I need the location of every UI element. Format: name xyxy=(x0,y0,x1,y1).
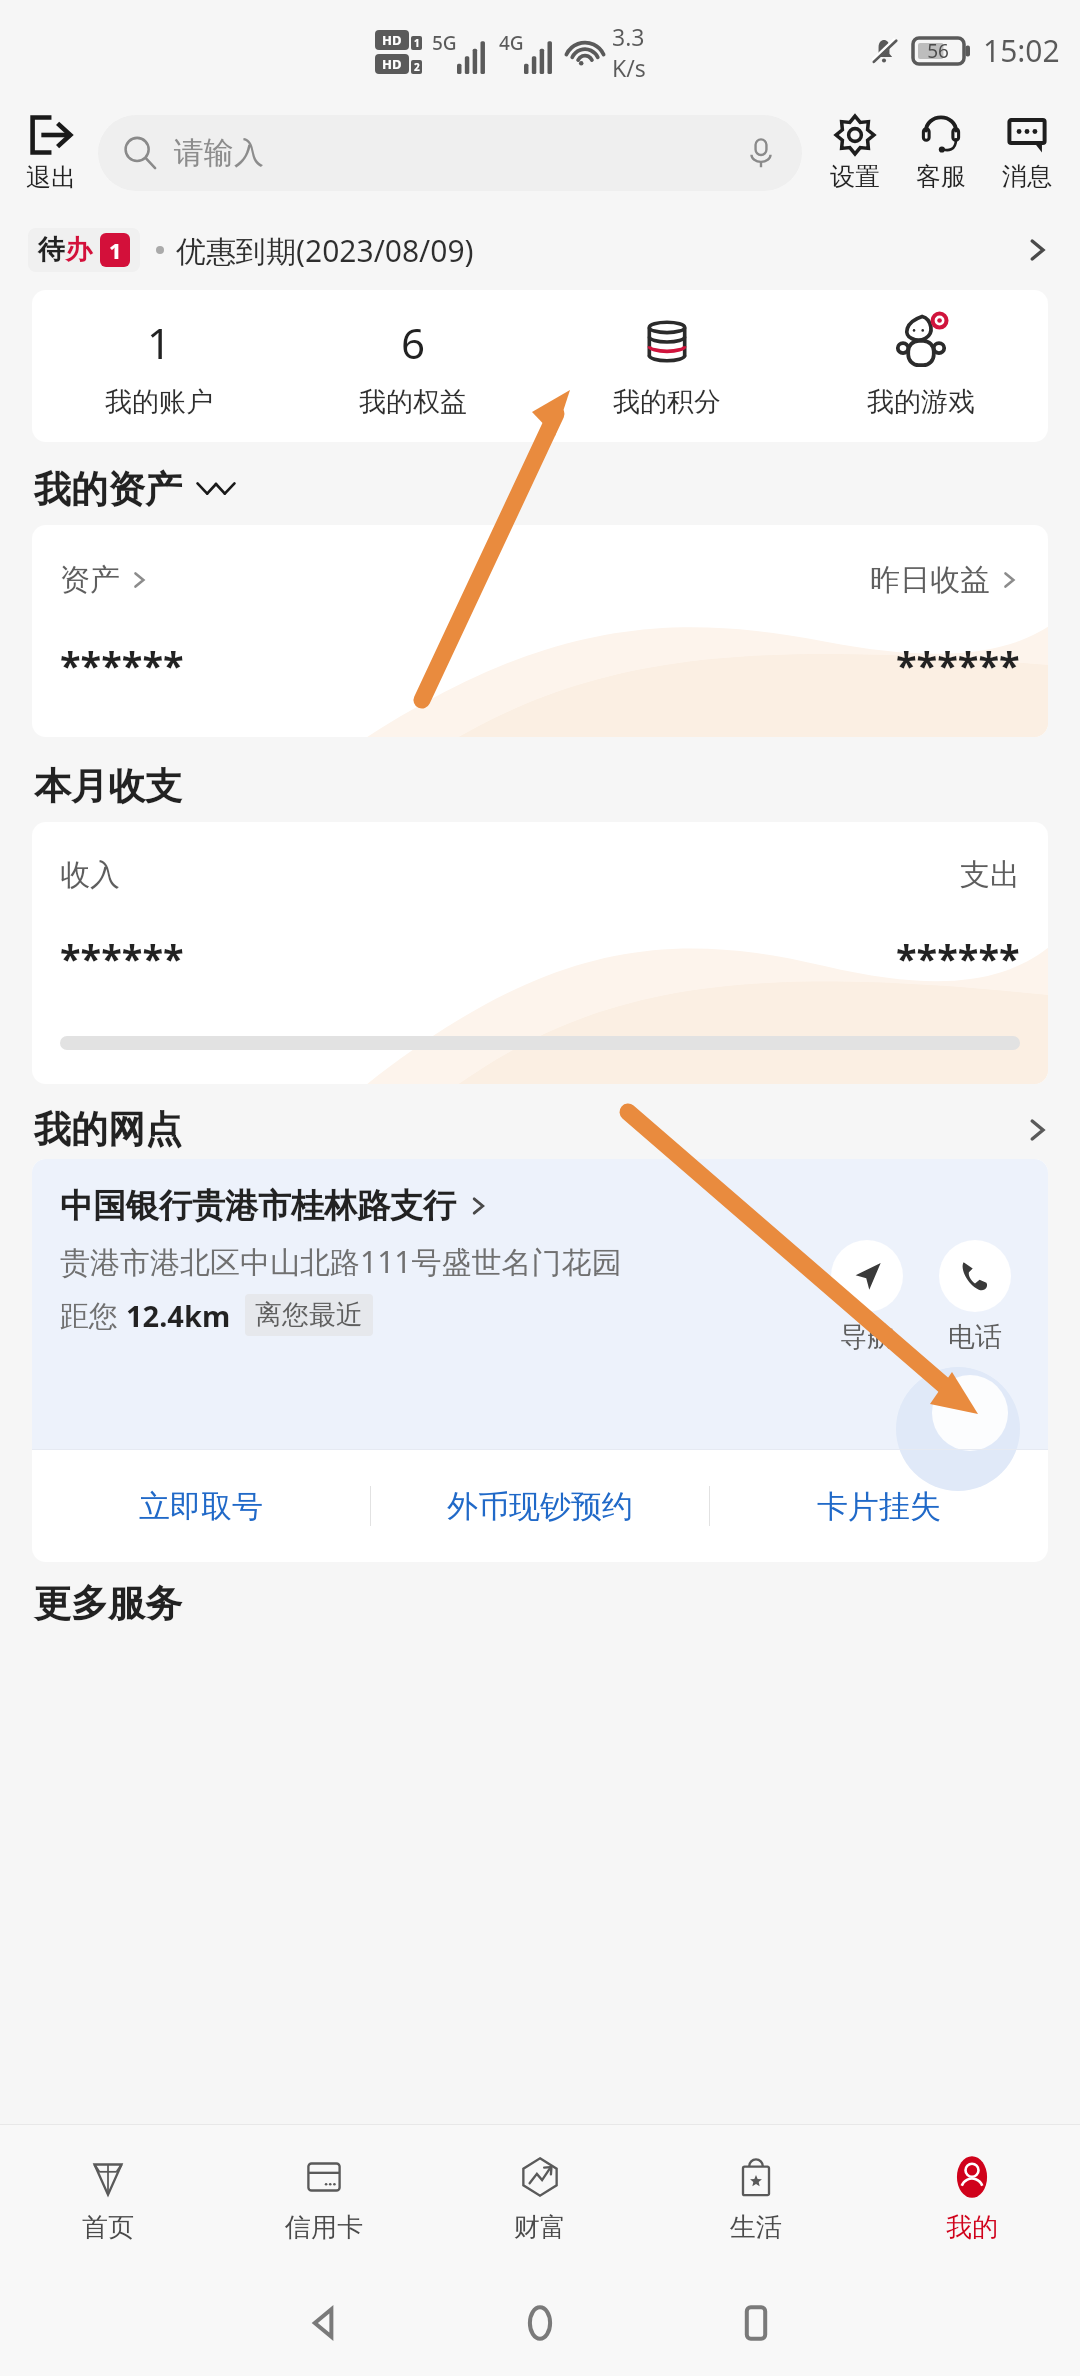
button[interactable]: 外币现钞预约 xyxy=(371,1450,709,1562)
staticText: 收入 xyxy=(60,856,120,894)
staticText: 导航 xyxy=(840,1320,894,1354)
button[interactable]: 客服 xyxy=(898,113,984,192)
staticText: 3.3 xyxy=(612,21,645,52)
button[interactable]: 立即取号 xyxy=(32,1450,370,1562)
staticText: 我的网点 xyxy=(34,1106,182,1153)
button[interactable]: 返回 xyxy=(216,2270,432,2376)
button[interactable]: 生活 xyxy=(648,2125,864,2270)
staticText: 我的权益 xyxy=(359,385,467,419)
button[interactable]: 6 xyxy=(286,290,540,442)
button[interactable]: 我的网点 xyxy=(0,1106,1080,1153)
staticText: 4G xyxy=(499,30,524,56)
button[interactable]: 待 xyxy=(0,210,1080,290)
staticText: 设置 xyxy=(830,161,880,192)
staticText: 生活 xyxy=(730,2211,782,2244)
staticText: 优惠到期(2023/08/09) xyxy=(176,230,474,271)
button[interactable]: 我的游戏 xyxy=(794,290,1048,442)
button[interactable]: 请输入 xyxy=(98,115,802,191)
staticText: 本月收支 xyxy=(34,763,182,810)
staticText: 6 xyxy=(401,314,426,371)
staticText: HD xyxy=(382,55,402,73)
staticText: K/s xyxy=(612,52,646,83)
staticText: 信用卡 xyxy=(285,2211,363,2244)
staticText: 退出 xyxy=(26,162,76,193)
button[interactable]: 我的积分 xyxy=(540,290,794,442)
staticText: 56 xyxy=(913,38,963,64)
staticText: 12.4km xyxy=(126,1296,231,1335)
button[interactable]: 显示金额 xyxy=(194,475,238,505)
staticText: 消息 xyxy=(1002,161,1052,192)
button[interactable]: 导航 xyxy=(824,1240,910,1354)
button[interactable]: 卡片挂失 xyxy=(710,1450,1048,1562)
staticText: 贵港市港北区中山北路111号盛世名门花园 xyxy=(60,1241,622,1282)
staticText: 15:02 xyxy=(983,30,1060,71)
staticText: 请输入 xyxy=(174,134,264,172)
button[interactable]: 财富 xyxy=(432,2125,648,2270)
staticText: ****** xyxy=(60,932,184,984)
button[interactable]: 信用卡 xyxy=(216,2125,432,2270)
staticText: HD xyxy=(382,31,402,49)
button[interactable]: 1 xyxy=(32,290,286,442)
staticText: ****** xyxy=(60,639,184,691)
staticText: 5G xyxy=(432,30,457,56)
staticText: 1 xyxy=(109,235,122,265)
staticText: 支出 xyxy=(960,856,1020,894)
staticText: 我的资产 xyxy=(34,466,182,513)
staticText: 财富 xyxy=(514,2211,566,2244)
staticText: 我的 xyxy=(946,2211,998,2244)
staticText: 距您 xyxy=(60,1295,126,1335)
staticText: 首页 xyxy=(82,2211,134,2244)
button[interactable]: 我的 xyxy=(864,2125,1080,2270)
button[interactable]: 消息 xyxy=(984,113,1070,192)
button[interactable]: 首页 xyxy=(0,2125,216,2270)
staticText: 1 xyxy=(414,36,420,50)
staticText: 资产 xyxy=(60,561,120,599)
other: 语音搜索 xyxy=(744,136,778,170)
staticText: 电话 xyxy=(948,1320,1002,1354)
button[interactable]: 电话 xyxy=(932,1240,1018,1354)
staticText: ****** xyxy=(896,932,1020,984)
staticText: 卡片挂失 xyxy=(817,1487,941,1526)
staticText: 昨日收益 xyxy=(870,561,990,599)
staticText: ****** xyxy=(896,639,1020,691)
staticText: 立即取号 xyxy=(139,1487,263,1526)
button[interactable]: 设置 xyxy=(812,113,898,192)
button[interactable]: 收入 xyxy=(32,822,1048,1084)
staticText: 1 xyxy=(147,314,172,371)
staticText: 我的游戏 xyxy=(867,385,975,419)
staticText: 2 xyxy=(414,60,420,74)
staticText: 我的账户 xyxy=(105,385,213,419)
staticText: 外币现钞预约 xyxy=(447,1487,633,1526)
staticText: 更多服务 xyxy=(34,1580,182,1627)
staticText: 客服 xyxy=(916,161,966,192)
staticText: 待 xyxy=(38,233,65,267)
button[interactable]: 中国银行贵港市桂林路支行 xyxy=(32,1159,1048,1449)
button[interactable]: 最近任务 xyxy=(648,2270,864,2376)
staticText: 我的积分 xyxy=(613,385,721,419)
staticText: 中国银行贵港市桂林路支行 xyxy=(60,1185,456,1227)
staticText: 办 xyxy=(65,233,92,267)
button[interactable]: 主页 xyxy=(432,2270,648,2376)
staticText: 离您最近 xyxy=(255,1298,363,1332)
button[interactable]: 退出 xyxy=(26,112,76,193)
button[interactable]: 资产 xyxy=(32,525,1048,737)
